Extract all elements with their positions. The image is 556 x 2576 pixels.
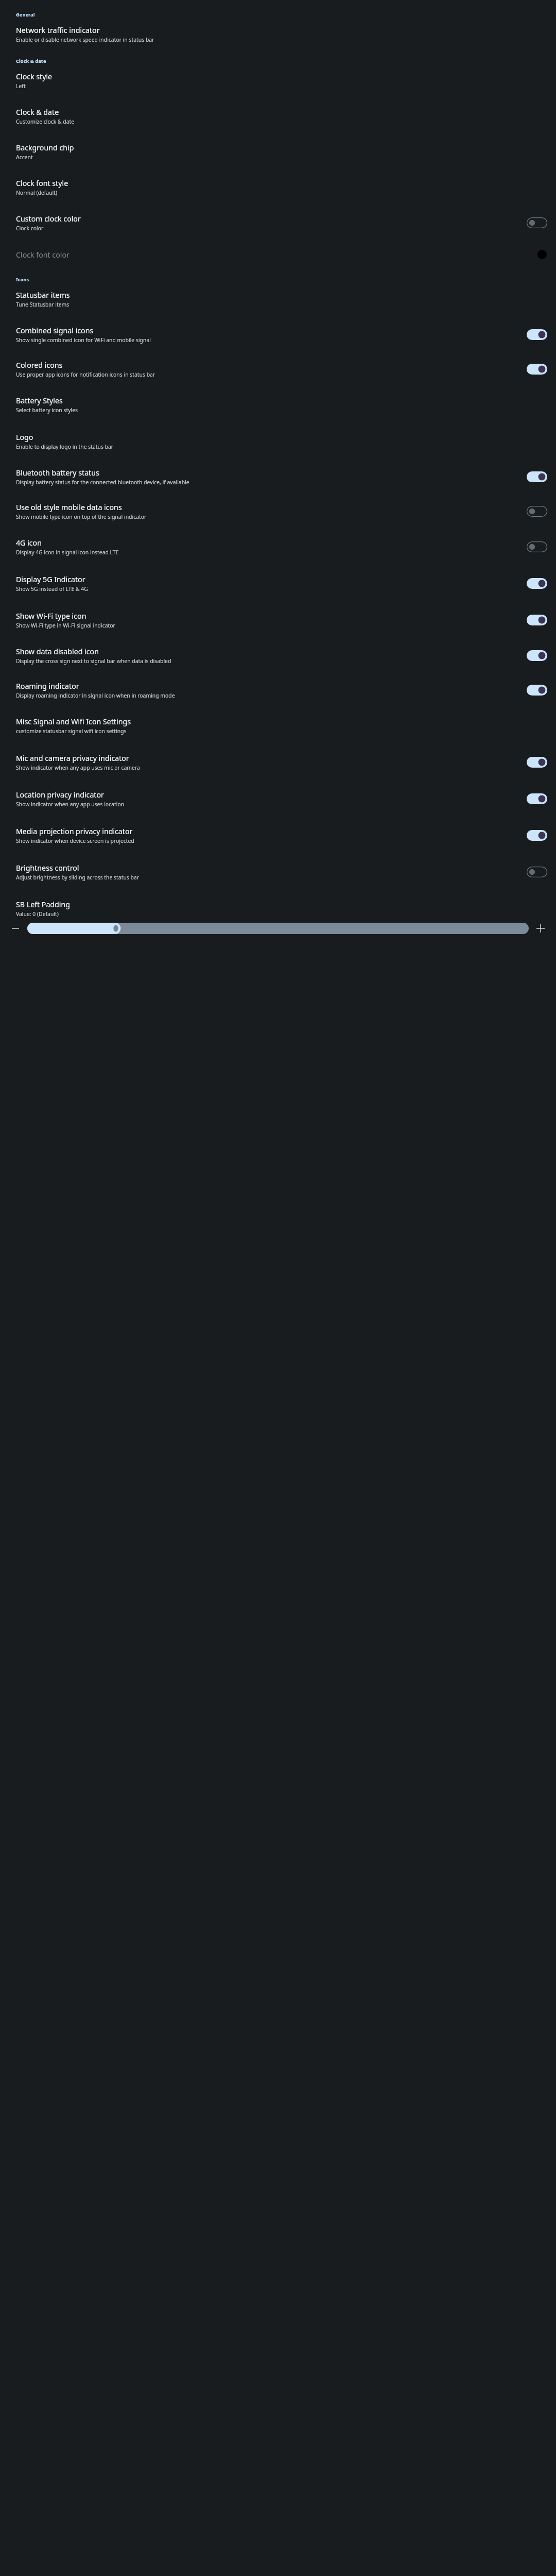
staticText: Colored icons (16, 360, 63, 370)
staticText: General (16, 11, 35, 18)
button[interactable]: SB Left Padding slider (27, 922, 529, 935)
staticText: Use old style mobile data icons (16, 502, 122, 512)
staticText: Show single combined icon for WiFi and m… (16, 336, 151, 344)
button[interactable]: Combined signal icons (0, 317, 556, 352)
staticText: Display roaming indicator in signal icon… (16, 692, 175, 699)
button[interactable]: Background chip (0, 134, 556, 170)
staticText: Tune Statusbar items (16, 301, 69, 308)
button[interactable]: Show data disabled icon (0, 638, 556, 673)
button[interactable]: Location privacy indicator (0, 781, 556, 817)
staticText: 4G icon (16, 538, 42, 548)
staticText: Combined signal icons (16, 326, 94, 335)
staticText: Show mobile type icon on top of the sign… (16, 513, 147, 520)
staticText: Left (16, 82, 26, 90)
staticText: Clock font color (16, 250, 69, 260)
button[interactable]: Mic and camera privacy indicator (0, 744, 556, 781)
staticText: Network traffic indicator (16, 25, 100, 35)
button[interactable]: 4G icon (0, 529, 556, 565)
button[interactable]: Colored icons (0, 352, 556, 386)
button[interactable]: Show Wi-Fi type icon (525, 613, 549, 628)
staticText: Value: 0 (Default) (16, 910, 59, 918)
staticText: Roaming indicator (16, 681, 79, 691)
staticText: Normal (default) (16, 189, 58, 196)
staticText: Clock & date (16, 107, 59, 117)
staticText: Battery Styles (16, 396, 63, 405)
staticText: Clock & date (16, 58, 46, 64)
button[interactable]: Clock font color (0, 239, 556, 271)
staticText: Misc Signal and Wifi Icon Settings (16, 717, 131, 726)
button[interactable]: Use old style mobile data icons (525, 504, 549, 519)
staticText: Custom clock color (16, 214, 81, 224)
staticText: Display the cross sign next to signal ba… (16, 657, 171, 665)
button[interactable]: 4G icon (525, 539, 549, 554)
button[interactable]: Clock & date (0, 98, 556, 134)
button[interactable]: Clock style (0, 72, 556, 98)
staticText: Display 5G Indicator (16, 574, 85, 584)
staticText: Clock style (16, 72, 53, 81)
button[interactable]: Clock font color swatch (535, 247, 549, 262)
staticText: Logo (16, 432, 33, 442)
button[interactable]: Use old style mobile data icons (0, 494, 556, 529)
staticText: Customize clock & date (16, 118, 75, 125)
button[interactable]: Clock font style (0, 170, 556, 205)
staticText: Show indicator when any app uses mic or … (16, 764, 140, 771)
staticText: Brightness control (16, 863, 79, 873)
button[interactable]: Custom clock color (0, 205, 556, 239)
staticText: SB Left Padding (16, 900, 70, 909)
button[interactable]: Decrease (9, 922, 22, 935)
staticText: Background chip (16, 143, 74, 152)
staticText: Accent (16, 154, 33, 161)
staticText: Show Wi-Fi type in Wi-Fi signal indicato… (16, 622, 115, 629)
button[interactable]: Display 5G Indicator (0, 565, 556, 602)
staticText: Adjust brightness by sliding across the … (16, 874, 140, 881)
button[interactable]: Increase (534, 922, 547, 935)
staticText: Bluetooth battery status (16, 468, 99, 478)
staticText: Show Wi-Fi type icon (16, 611, 86, 621)
staticText: Show 5G instead of LTE & 4G (16, 585, 88, 592)
button[interactable]: Display 5G Indicator (525, 576, 549, 591)
staticText: Display 4G icon in signal icon instead L… (16, 549, 119, 556)
button[interactable]: Brightness control (0, 854, 556, 890)
button[interactable]: Network traffic indicator (0, 25, 556, 50)
button[interactable]: Show Wi-Fi type icon (0, 602, 556, 638)
button[interactable]: Location privacy indicator (525, 791, 549, 806)
staticText: Statusbar items (16, 290, 70, 300)
button[interactable]: Battery Styles (0, 386, 556, 423)
staticText: Show indicator when device screen is pro… (16, 837, 134, 844)
staticText: Display battery status for the connected… (16, 479, 189, 486)
button[interactable]: Roaming indicator (0, 673, 556, 707)
button[interactable]: Bluetooth battery status (0, 460, 556, 494)
button[interactable]: Show data disabled icon (525, 648, 549, 663)
staticText: Use proper app icons for notification ic… (16, 371, 155, 378)
button[interactable]: Media projection privacy indicator (525, 828, 549, 843)
button[interactable]: Misc Signal and Wifi Icon Settings (0, 707, 556, 744)
button[interactable]: Logo (0, 423, 556, 460)
staticText: Enable to display logo in the status bar (16, 443, 114, 450)
button[interactable]: Custom clock color (525, 215, 549, 230)
button[interactable]: SB Left Padding (0, 890, 556, 919)
staticText: Mic and camera privacy indicator (16, 753, 129, 763)
staticText: Show indicator when any app uses locatio… (16, 801, 125, 808)
staticText: Icons (16, 276, 29, 283)
button[interactable]: Combined signal icons (525, 327, 549, 342)
button[interactable]: Statusbar items (0, 290, 556, 317)
staticText: Select battery icon styles (16, 406, 78, 414)
button[interactable]: Bluetooth battery status (525, 469, 549, 484)
staticText: Enable or disable network speed indicato… (16, 36, 154, 43)
staticText: Show data disabled icon (16, 647, 99, 656)
staticText: customize statusbar signal wifi icon set… (16, 727, 127, 735)
button[interactable]: Mic and camera privacy indicator (525, 755, 549, 770)
staticText: Clock color (16, 225, 44, 232)
button[interactable]: Colored icons (525, 362, 549, 377)
staticText: Media projection privacy indicator (16, 826, 133, 836)
button[interactable]: Roaming indicator (525, 683, 549, 698)
button[interactable]: Brightness control (525, 865, 549, 879)
staticText: Location privacy indicator (16, 790, 104, 800)
staticText: Clock font style (16, 178, 68, 188)
button[interactable]: Media projection privacy indicator (0, 817, 556, 854)
